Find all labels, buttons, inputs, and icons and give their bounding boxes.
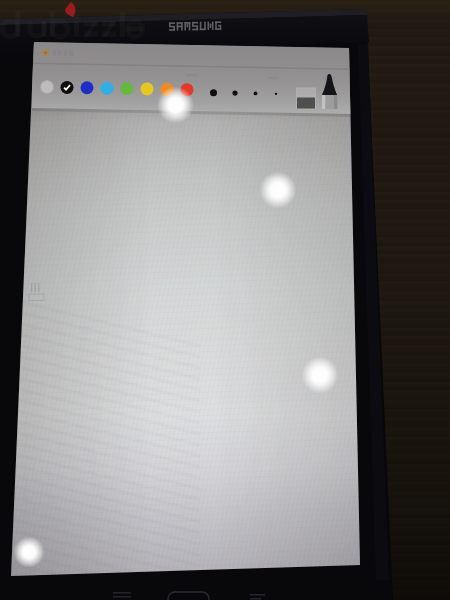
button[interactable]: Home bbox=[164, 588, 214, 600]
button[interactable]: Green colour bbox=[120, 80, 136, 96]
button[interactable]: Medium stroke bbox=[248, 82, 264, 98]
button[interactable]: Recent apps bbox=[108, 586, 138, 600]
button[interactable]: Blue colour bbox=[80, 80, 96, 96]
button[interactable]: Red colour bbox=[180, 80, 196, 96]
button[interactable]: Thin stroke bbox=[269, 82, 285, 98]
button[interactable]: Extra thick stroke bbox=[206, 82, 222, 98]
button[interactable]: Pen bbox=[319, 72, 341, 110]
button[interactable]: Yellow colour bbox=[140, 80, 156, 96]
button[interactable]: Black colour bbox=[60, 80, 76, 96]
button[interactable]: Undo bbox=[40, 46, 54, 60]
button[interactable]: Silver colour bbox=[40, 80, 56, 96]
button[interactable]: Back bbox=[245, 588, 271, 600]
button[interactable]: Eraser bbox=[296, 86, 317, 110]
button[interactable]: Cyan colour bbox=[100, 80, 116, 96]
button[interactable]: Orange colour bbox=[160, 80, 176, 96]
button[interactable]: Thick stroke bbox=[227, 82, 243, 98]
